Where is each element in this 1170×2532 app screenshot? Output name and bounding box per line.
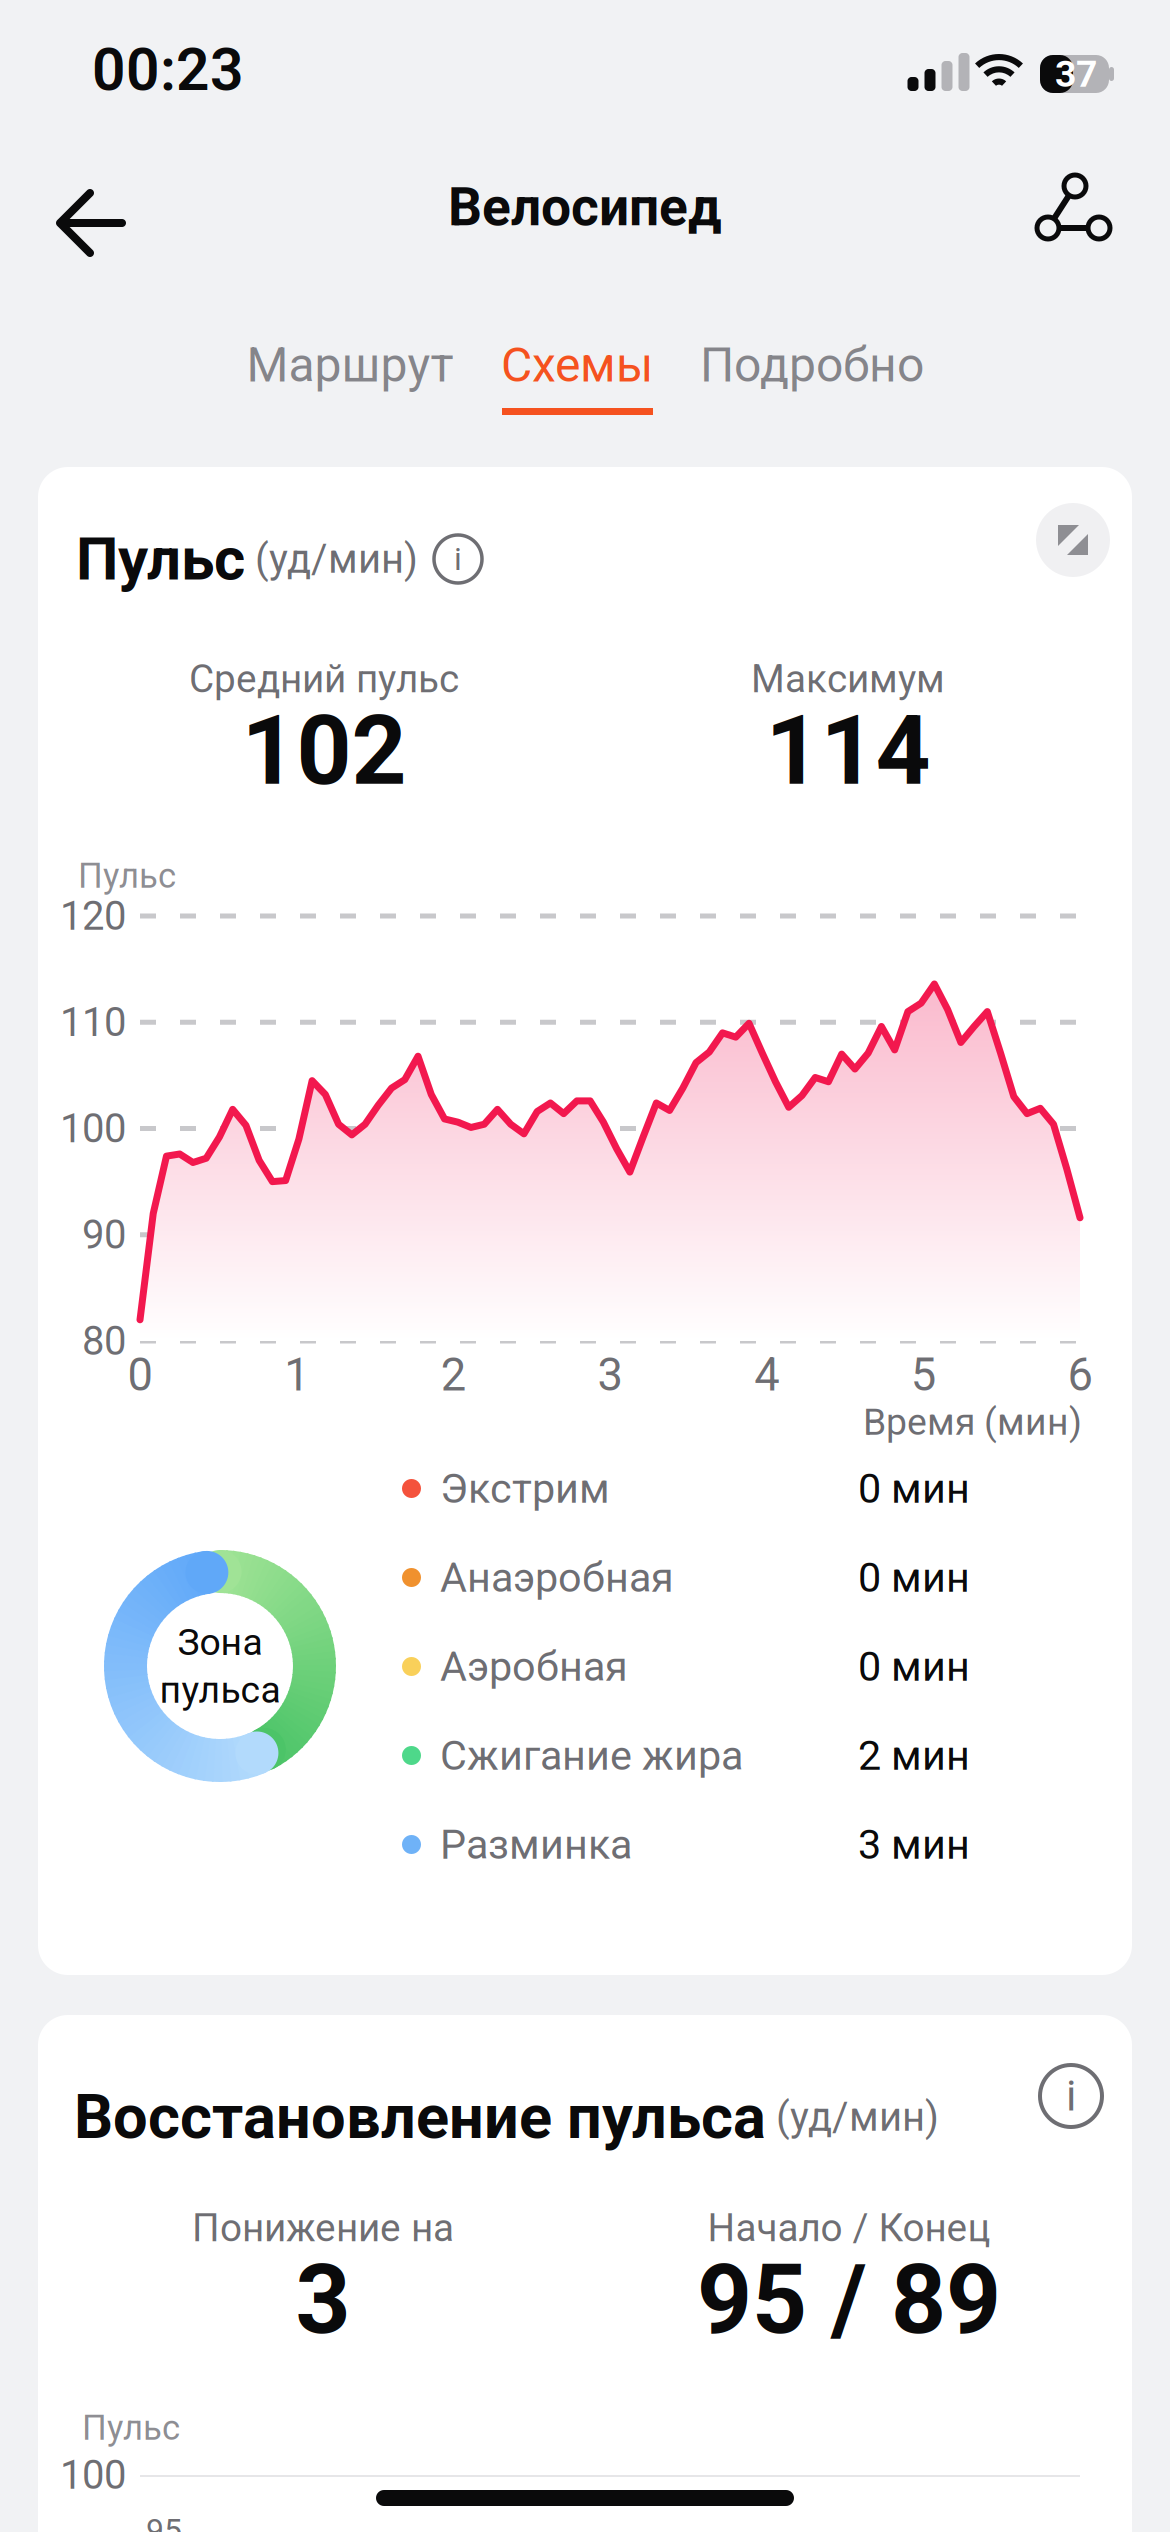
staticText: 4 — [754, 1348, 779, 1401]
staticText: 2 — [441, 1348, 466, 1401]
staticText: 102 — [241, 695, 406, 807]
staticText: Экстрим — [440, 1464, 610, 1513]
staticText: (уд/мин) — [766, 2094, 939, 2140]
staticText: 3 — [295, 2244, 350, 2356]
button[interactable]: Share route — [1011, 159, 1115, 255]
staticText: Разминка — [440, 1820, 632, 1869]
staticText: 0 мин — [858, 1464, 970, 1513]
staticText: 5 — [911, 1348, 936, 1401]
staticText: 00:23 — [92, 36, 244, 104]
staticText: Максимум — [751, 656, 945, 702]
staticText: 6 — [1067, 1348, 1092, 1401]
staticText: 2 мин — [858, 1731, 970, 1780]
button[interactable]: Подробно — [687, 330, 937, 400]
staticText: Восстановление пульса — [74, 2081, 766, 2153]
staticText: 0 мин — [858, 1642, 970, 1691]
staticText: Сжигание жира — [440, 1731, 743, 1780]
staticText: 120 — [60, 893, 126, 939]
staticText: Понижение на — [192, 2205, 454, 2251]
staticText: Пульс — [82, 2408, 180, 2448]
staticText: 0 — [127, 1348, 152, 1401]
staticText: пульса — [159, 1668, 280, 1712]
staticText: 3 — [597, 1348, 622, 1401]
staticText: i — [454, 540, 462, 578]
staticText: 100 — [60, 2452, 126, 2498]
staticText: Пульс — [78, 856, 176, 896]
staticText: 95 / 89 — [697, 2244, 1001, 2356]
staticText: 37 — [1055, 52, 1097, 96]
staticText: Анаэробная — [440, 1553, 674, 1602]
staticText: 3 мин — [858, 1820, 970, 1869]
staticText: Маршрут — [246, 337, 453, 393]
staticText: Схемы — [501, 337, 653, 393]
button[interactable]: Expand chart — [1036, 503, 1110, 577]
staticText: Велосипед — [448, 176, 722, 238]
button[interactable]: Back — [32, 165, 150, 281]
staticText: (уд/мин) — [245, 536, 418, 582]
staticText: 1 — [284, 1348, 309, 1401]
staticText: Средний пульс — [189, 656, 459, 702]
button[interactable]: Маршрут — [235, 330, 465, 400]
staticText: 100 — [60, 1105, 126, 1152]
staticText: Пульс — [76, 524, 245, 594]
staticText: 80 — [82, 1318, 126, 1364]
button[interactable]: Схемы — [492, 330, 662, 422]
staticText: Зона — [177, 1620, 262, 1664]
staticText: 110 — [60, 999, 126, 1046]
staticText: i — [1066, 2071, 1076, 2121]
staticText: Подробно — [700, 337, 924, 393]
staticText: 114 — [765, 695, 930, 807]
staticText: 95 — [146, 2511, 182, 2532]
staticText: 0 мин — [858, 1553, 970, 1602]
button[interactable]: Info — [1040, 2065, 1102, 2127]
staticText: 90 — [82, 1211, 126, 1258]
staticText: Аэробная — [440, 1642, 628, 1691]
staticText: Время (мин) — [863, 1400, 1082, 1444]
staticText: Начало / Конец — [707, 2205, 990, 2251]
